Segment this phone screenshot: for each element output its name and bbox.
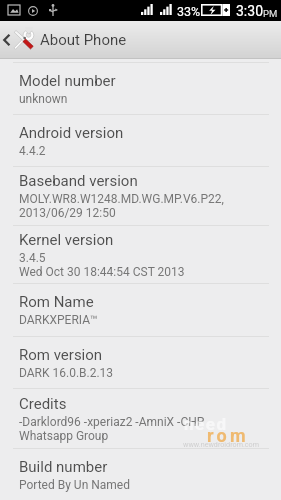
staticText: Wed Oct 30 18:44:54 CST 2013 [19, 265, 185, 279]
staticText: Android version [19, 124, 124, 142]
staticText: Ported By Un Named [19, 478, 130, 492]
staticText: Kernel version [19, 231, 114, 249]
staticText: MOLY.WR8.W1248.MD.WG.MP.V6.P22, [19, 192, 224, 206]
button[interactable]: Navigate up [0, 21, 135, 59]
button[interactable]: Build number [0, 449, 281, 500]
staticText: 4.4.2 [19, 144, 46, 158]
staticText: -Darklord96 -xperiaz2 -AmniX -CHP [19, 415, 205, 429]
staticText: Baseband version [19, 172, 138, 190]
button[interactable]: Model number [0, 63, 281, 114]
staticText: DARK 16.0.B.2.13 [19, 366, 114, 380]
button[interactable]: Rom Name [0, 284, 281, 336]
staticText: Credits [19, 395, 67, 413]
staticText: Build number [19, 458, 108, 476]
staticText: 2013/06/29 12:50 [19, 206, 116, 220]
button[interactable]: Rom version [0, 337, 281, 388]
button[interactable]: Android version [0, 115, 281, 166]
staticText: About Phone [40, 31, 127, 49]
staticText: 3:30 [236, 3, 263, 19]
button[interactable]: Baseband version [0, 167, 281, 225]
staticText: need [184, 414, 228, 434]
staticText: www.newdroidrom.com [183, 440, 259, 448]
staticText: Rom version [19, 346, 103, 364]
staticText: DARKXPERIA™ [19, 313, 98, 327]
staticText: Whatsapp Group [19, 429, 109, 443]
button[interactable]: Credits [0, 389, 281, 448]
staticText: 33% [177, 4, 201, 19]
staticText: rom [207, 425, 249, 446]
staticText: Rom Name [19, 293, 94, 311]
staticText: 3.4.5 [19, 251, 46, 265]
staticText: Model number [19, 72, 116, 90]
button[interactable]: Kernel version [0, 226, 281, 283]
staticText: unknown [19, 92, 68, 106]
staticText: PM [263, 8, 278, 19]
